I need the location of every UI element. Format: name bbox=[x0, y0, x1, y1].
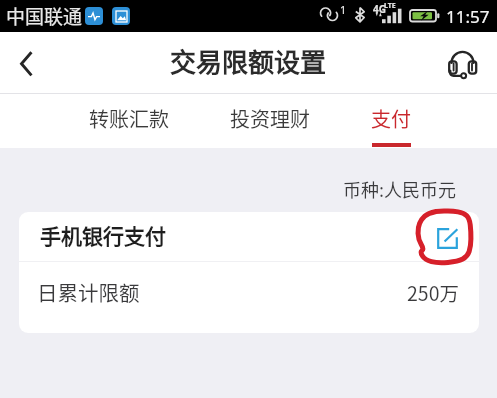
staticText: 币种:人民币元 bbox=[343, 176, 457, 202]
staticText: 投资理财 bbox=[230, 104, 310, 133]
button[interactable]: 日累计限额 bbox=[19, 262, 479, 322]
button[interactable]: 手机银行支付 bbox=[19, 212, 479, 261]
staticText: 日累计限额 bbox=[37, 277, 140, 307]
staticText: 手机银行支付 bbox=[40, 220, 166, 250]
staticText: 250万 bbox=[407, 278, 459, 306]
button[interactable]: 支付 bbox=[356, 94, 426, 148]
staticText: 支付 bbox=[371, 104, 411, 133]
button[interactable]: 转账汇款 bbox=[74, 94, 184, 148]
staticText: 转账汇款 bbox=[89, 104, 169, 133]
button[interactable]: Customer service bbox=[442, 44, 482, 84]
staticText: 中国联通 bbox=[6, 2, 83, 30]
staticText: 11:57 bbox=[446, 5, 490, 28]
staticText: 交易限额设置 bbox=[170, 42, 327, 80]
staticText: 1 bbox=[340, 2, 347, 17]
button[interactable]: 投资理财 bbox=[215, 94, 325, 148]
button[interactable]: Edit bbox=[434, 225, 460, 251]
button[interactable]: Back bbox=[5, 43, 47, 85]
staticText: LTE bbox=[384, 1, 396, 11]
staticText: 4G bbox=[373, 2, 386, 16]
